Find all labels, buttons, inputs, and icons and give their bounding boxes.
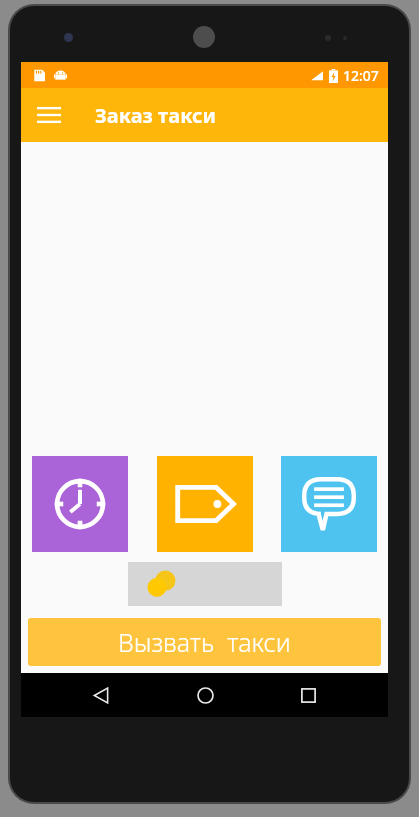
button[interactable]: Вызвать такси bbox=[28, 618, 381, 666]
button[interactable]: Advertisement banner bbox=[128, 562, 282, 606]
button[interactable]: Home bbox=[181, 673, 229, 717]
button[interactable]: Promo code bbox=[157, 456, 253, 552]
staticText: Вызвать такси bbox=[118, 625, 291, 659]
staticText: Заказ такси bbox=[95, 102, 217, 129]
button[interactable]: Schedule a ride bbox=[32, 456, 128, 552]
button[interactable]: Messages bbox=[281, 456, 377, 552]
button[interactable]: Back bbox=[77, 673, 125, 717]
button[interactable]: Recent apps bbox=[284, 673, 332, 717]
staticText: 12:07 bbox=[343, 66, 379, 85]
button[interactable]: Open navigation menu bbox=[29, 95, 69, 135]
